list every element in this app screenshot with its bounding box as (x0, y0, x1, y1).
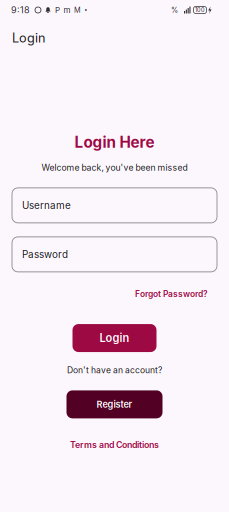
staticText: Username (22, 199, 71, 211)
staticText: Welcome back, you've been missed (41, 162, 187, 173)
staticText: Register (96, 399, 132, 410)
staticText: P (55, 5, 60, 15)
staticText: Login Here (74, 133, 154, 151)
staticText: Login (12, 30, 45, 46)
staticText: Password (22, 248, 68, 260)
button[interactable]: Password (12, 237, 217, 272)
staticText: % (171, 6, 178, 14)
staticText: Terms and Conditions (70, 439, 159, 450)
button[interactable]: Register (66, 390, 162, 418)
staticText: M (74, 6, 81, 14)
staticText: 9:18 (11, 4, 30, 15)
staticText: Login (99, 331, 129, 345)
button[interactable]: Login (72, 324, 156, 352)
staticText: Don't have an account? (67, 365, 162, 375)
staticText: m (63, 5, 70, 15)
staticText: Forgot Password? (135, 289, 208, 299)
button[interactable]: Forgot Password? (135, 289, 208, 299)
button[interactable]: Username (12, 188, 217, 223)
staticText: 100 (195, 7, 205, 13)
button[interactable]: Terms and Conditions (70, 439, 159, 450)
